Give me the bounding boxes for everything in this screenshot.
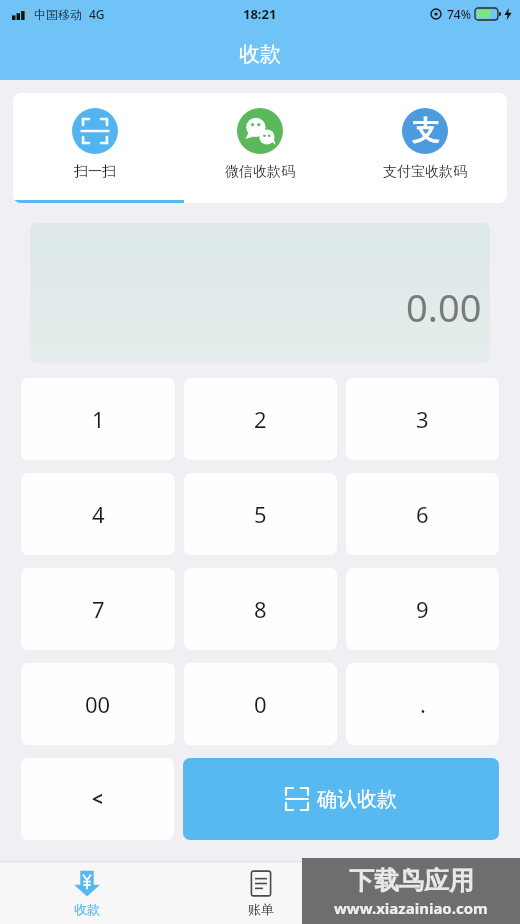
- staticText: 74%: [447, 6, 471, 22]
- button[interactable]: 扫一扫: [13, 93, 177, 203]
- staticText: 收款: [239, 41, 281, 67]
- button[interactable]: .: [346, 663, 499, 745]
- button[interactable]: Backspace: [21, 758, 174, 840]
- button[interactable]: 确认收款: [183, 758, 499, 840]
- staticText: 确认收款: [317, 787, 397, 812]
- staticText: 6: [416, 499, 429, 529]
- staticText: 9: [416, 594, 429, 624]
- staticText: 4G: [89, 6, 105, 22]
- staticText: www.xiazainiao.com: [334, 898, 488, 918]
- staticText: 微信收款码: [225, 163, 295, 181]
- button[interactable]: 支: [342, 93, 507, 203]
- button[interactable]: 账单: [174, 862, 347, 924]
- staticText: 中国移动: [34, 7, 82, 22]
- staticText: 收款: [74, 901, 100, 917]
- staticText: 18:21: [243, 5, 277, 23]
- button[interactable]: 00: [21, 663, 175, 745]
- staticText: 支: [412, 114, 439, 148]
- staticText: 0: [254, 689, 267, 719]
- button[interactable]: 4: [21, 473, 175, 555]
- staticText: 3: [416, 404, 429, 434]
- button[interactable]: 微信收款码: [177, 93, 342, 203]
- staticText: 5: [254, 499, 267, 529]
- staticText: 下载鸟应用: [349, 865, 474, 896]
- button[interactable]: 2: [184, 378, 337, 460]
- staticText: 0.00: [406, 281, 482, 333]
- button[interactable]: 收款: [0, 862, 174, 924]
- button[interactable]: 1: [21, 378, 175, 460]
- staticText: .: [420, 689, 426, 719]
- staticText: 账单: [248, 901, 274, 917]
- button[interactable]: 0: [184, 663, 337, 745]
- button[interactable]: 6: [346, 473, 499, 555]
- button[interactable]: 9: [346, 568, 499, 650]
- staticText: 1: [92, 404, 105, 434]
- staticText: 支付宝收款码: [383, 163, 467, 181]
- staticText: <: [92, 786, 103, 812]
- staticText: 8: [254, 594, 267, 624]
- staticText: 7: [92, 594, 105, 624]
- button[interactable]: 3: [346, 378, 499, 460]
- staticText: 4: [92, 499, 105, 529]
- button[interactable]: 7: [21, 568, 175, 650]
- staticText: 2: [254, 404, 267, 434]
- button[interactable]: 8: [184, 568, 337, 650]
- button[interactable]: 5: [184, 473, 337, 555]
- staticText: 00: [85, 689, 111, 719]
- staticText: 扫一扫: [74, 163, 116, 181]
